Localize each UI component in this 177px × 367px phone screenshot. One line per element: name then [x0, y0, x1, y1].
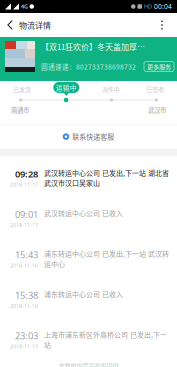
- staticText: 圆通速递：802733738698732: [41, 62, 136, 71]
- button[interactable]: More options: [151, 13, 173, 37]
- staticText: 浦东转运中心公司 已发出,下一站 武汉转运中心: [44, 249, 169, 269]
- staticText: 15:38: [15, 289, 38, 301]
- staticText: 2018-11-17: [10, 181, 38, 188]
- staticText: 2018-11-16: [10, 302, 38, 309]
- staticText: 浦东转运中心公司 已收入: [44, 289, 123, 299]
- staticText: 4G: [21, 3, 28, 10]
- staticText: 2018-11-15: [10, 343, 38, 350]
- staticText: 2018-11-16: [10, 262, 38, 269]
- button[interactable]: Back: [0, 13, 19, 37]
- staticText: 上海市浦东新区外高桥公司 已发出,下一站: [44, 329, 167, 350]
- staticText: 已签收: [146, 85, 164, 93]
- staticText: 15:43: [15, 249, 38, 261]
- staticText: 23:03: [15, 329, 38, 342]
- staticText: 武汉市: [148, 105, 166, 115]
- button[interactable]: 更多服务: [144, 61, 174, 71]
- staticText: 已发货: [13, 85, 31, 93]
- staticText: 09:01: [15, 208, 38, 220]
- staticText: 更多服务: [147, 62, 171, 71]
- staticText: 派件中: [102, 85, 120, 93]
- staticText: 武汉转运中心公司 已收入: [44, 208, 123, 218]
- staticText: 运输中: [56, 83, 77, 92]
- staticText: 00:04: [154, 2, 172, 11]
- staticText: 南通市: [11, 105, 29, 115]
- staticText: 本数据由菜鸟裹裹提供: [58, 361, 118, 367]
- staticText: 武汉转运中心公司 已发出,下一站 湖北省武汉市汉口吴家山: [44, 168, 169, 188]
- staticText: 09:28: [15, 168, 38, 180]
- staticText: 物流详情: [19, 19, 51, 31]
- staticText: 联系快递客服: [72, 132, 114, 142]
- staticText: 【双11狂欢价】冬天盖加厚…: [41, 41, 145, 52]
- button[interactable]: 联系快递客服: [0, 125, 177, 149]
- staticText: HD: [144, 3, 152, 10]
- staticText: 2018-11-17: [10, 221, 38, 229]
